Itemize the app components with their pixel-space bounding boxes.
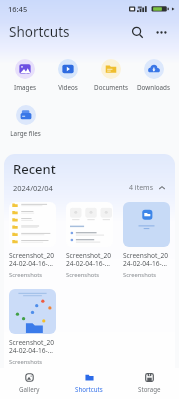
button[interactable]: Screenshot_2024-02-04-16-… bbox=[4, 202, 61, 279]
staticText: 2024/02/04 bbox=[13, 183, 53, 193]
button[interactable]: Screenshot_2024-02-04-16-… bbox=[4, 289, 61, 366]
button[interactable]: Screenshot_2024-02-04-16-… bbox=[61, 202, 118, 279]
button[interactable]: Search bbox=[125, 20, 149, 44]
button[interactable]: Documents bbox=[89, 49, 132, 95]
button[interactable]: Screenshot_2024-02-04-16-… bbox=[118, 202, 175, 279]
button[interactable]: Images bbox=[4, 49, 46, 95]
staticText: Shortcuts bbox=[9, 23, 70, 41]
staticText: Documents bbox=[94, 83, 128, 92]
staticText: Screenshots bbox=[123, 271, 157, 279]
staticText: 16:45 bbox=[8, 4, 28, 14]
staticText: Shortcuts bbox=[75, 385, 103, 393]
button[interactable]: Videos bbox=[46, 49, 89, 95]
staticText: Large files bbox=[10, 129, 41, 138]
button[interactable]: Gallery bbox=[0, 368, 59, 399]
staticText: Screenshot_2024-02-04-16-… bbox=[9, 251, 56, 268]
staticText: Screenshots bbox=[9, 271, 43, 279]
button[interactable]: 4 items bbox=[129, 183, 166, 193]
staticText: 4 items bbox=[129, 183, 154, 193]
staticText: Recent bbox=[13, 160, 56, 178]
staticText: Screenshots bbox=[66, 271, 100, 279]
staticText: Screenshots bbox=[9, 358, 43, 366]
staticText: Storage bbox=[138, 385, 161, 393]
staticText: Images bbox=[14, 83, 36, 92]
button[interactable]: Downloads bbox=[132, 49, 175, 95]
staticText: Screenshot_2024-02-04-16-… bbox=[9, 338, 56, 355]
button[interactable]: Large files bbox=[4, 95, 47, 141]
staticText: Screenshot_2024-02-04-16-… bbox=[123, 251, 170, 268]
button[interactable]: More options bbox=[149, 20, 173, 44]
button[interactable]: Shortcuts bbox=[59, 368, 119, 399]
staticText: Videos bbox=[58, 83, 78, 92]
staticText: Gallery bbox=[19, 385, 40, 393]
staticText: Downloads bbox=[137, 83, 170, 92]
staticText: Screenshot_2024-02-04-16-… bbox=[66, 251, 113, 268]
button[interactable]: Storage bbox=[119, 368, 179, 399]
